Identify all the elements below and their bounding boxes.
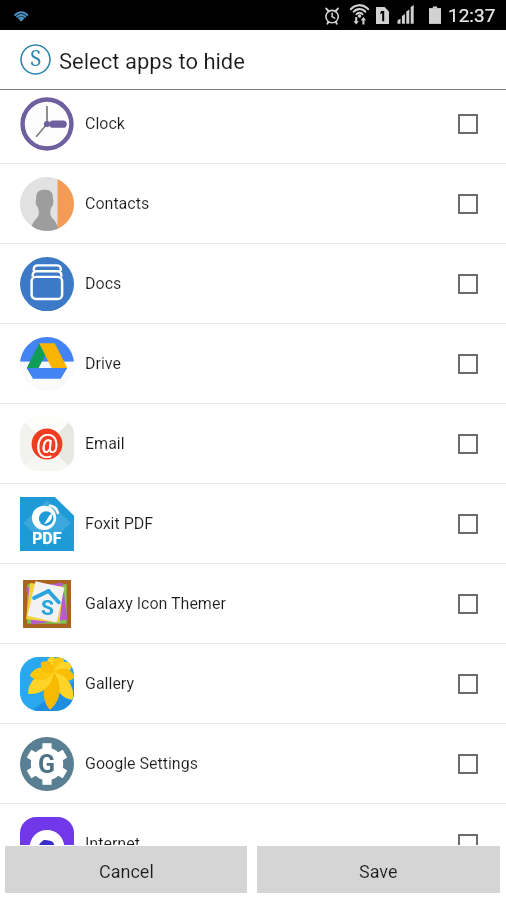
button[interactable]: Hide Contacts checkbox <box>458 194 478 214</box>
button[interactable]: Hide Clock checkbox <box>458 114 478 134</box>
button[interactable]: S <box>0 564 506 643</box>
staticText: Gallery <box>85 674 134 693</box>
button[interactable]: Contacts <box>0 164 506 243</box>
button[interactable]: @ <box>0 404 506 483</box>
button[interactable]: G <box>0 724 506 803</box>
button[interactable]: Docs <box>0 244 506 323</box>
button[interactable]: Hide Docs checkbox <box>458 274 478 294</box>
button[interactable]: Hide Email checkbox <box>458 434 478 454</box>
staticText: Cancel <box>99 861 154 882</box>
button[interactable]: Cancel <box>5 846 247 893</box>
staticText: 12:37 <box>448 4 496 26</box>
button[interactable]: PDF <box>0 484 506 563</box>
staticText: PDF <box>32 529 62 548</box>
button[interactable]: Hide Gallery checkbox <box>458 674 478 694</box>
staticText: Email <box>85 434 125 453</box>
staticText: S <box>41 596 54 621</box>
staticText: Select apps to hide <box>59 49 245 75</box>
button[interactable]: Hide Galaxy Icon Themer checkbox <box>458 594 478 614</box>
button[interactable]: Clock <box>0 90 506 163</box>
staticText: Clock <box>85 114 125 133</box>
staticText: Drive <box>85 354 121 373</box>
button[interactable]: Hide Drive checkbox <box>458 354 478 374</box>
staticText: Galaxy Icon Themer <box>85 594 226 613</box>
staticText: G <box>38 750 56 779</box>
staticText: Save <box>359 861 398 882</box>
staticText: @ <box>36 430 59 459</box>
staticText: Foxit PDF <box>85 514 154 533</box>
button[interactable]: Internet <box>0 804 506 845</box>
button[interactable]: Save <box>257 846 500 893</box>
button[interactable]: Hide Google Settings checkbox <box>458 754 478 774</box>
staticText: Internet <box>85 834 140 845</box>
button[interactable]: Hide Internet checkbox <box>458 834 478 845</box>
button[interactable]: Hide Foxit PDF checkbox <box>458 514 478 534</box>
staticText: S <box>30 44 42 73</box>
staticText: Contacts <box>85 194 150 213</box>
button[interactable]: App icon <box>20 44 51 75</box>
staticText: Google Settings <box>85 754 198 773</box>
button[interactable]: Drive <box>0 324 506 403</box>
button[interactable]: Gallery <box>0 644 506 723</box>
staticText: Docs <box>85 274 122 293</box>
